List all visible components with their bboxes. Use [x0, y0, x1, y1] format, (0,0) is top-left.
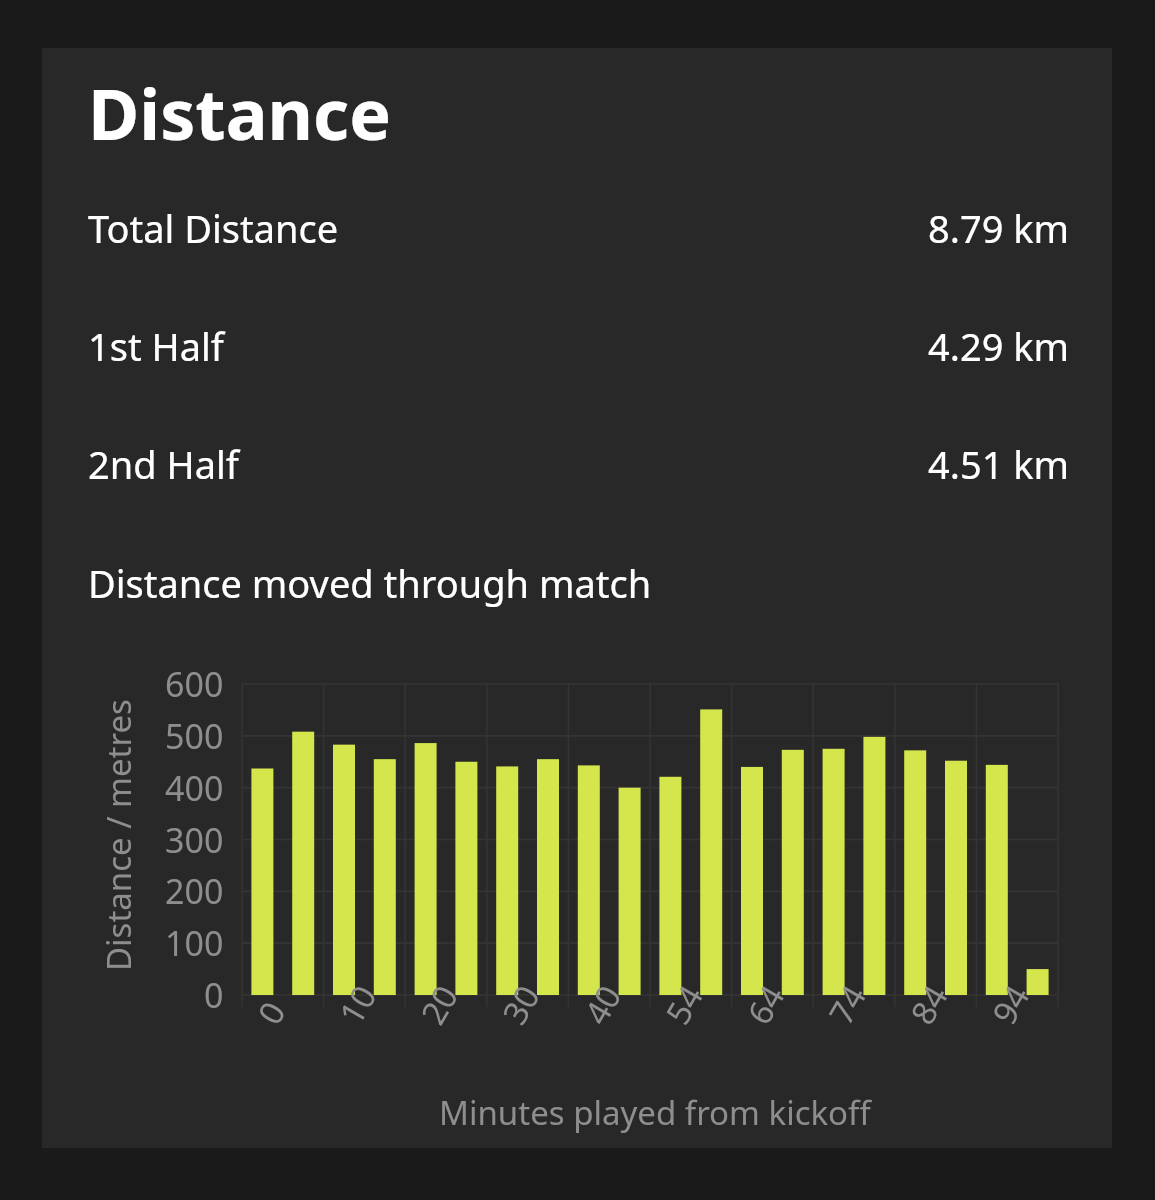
button[interactable]: Distance statistics card: [0, 0, 1155, 1200]
